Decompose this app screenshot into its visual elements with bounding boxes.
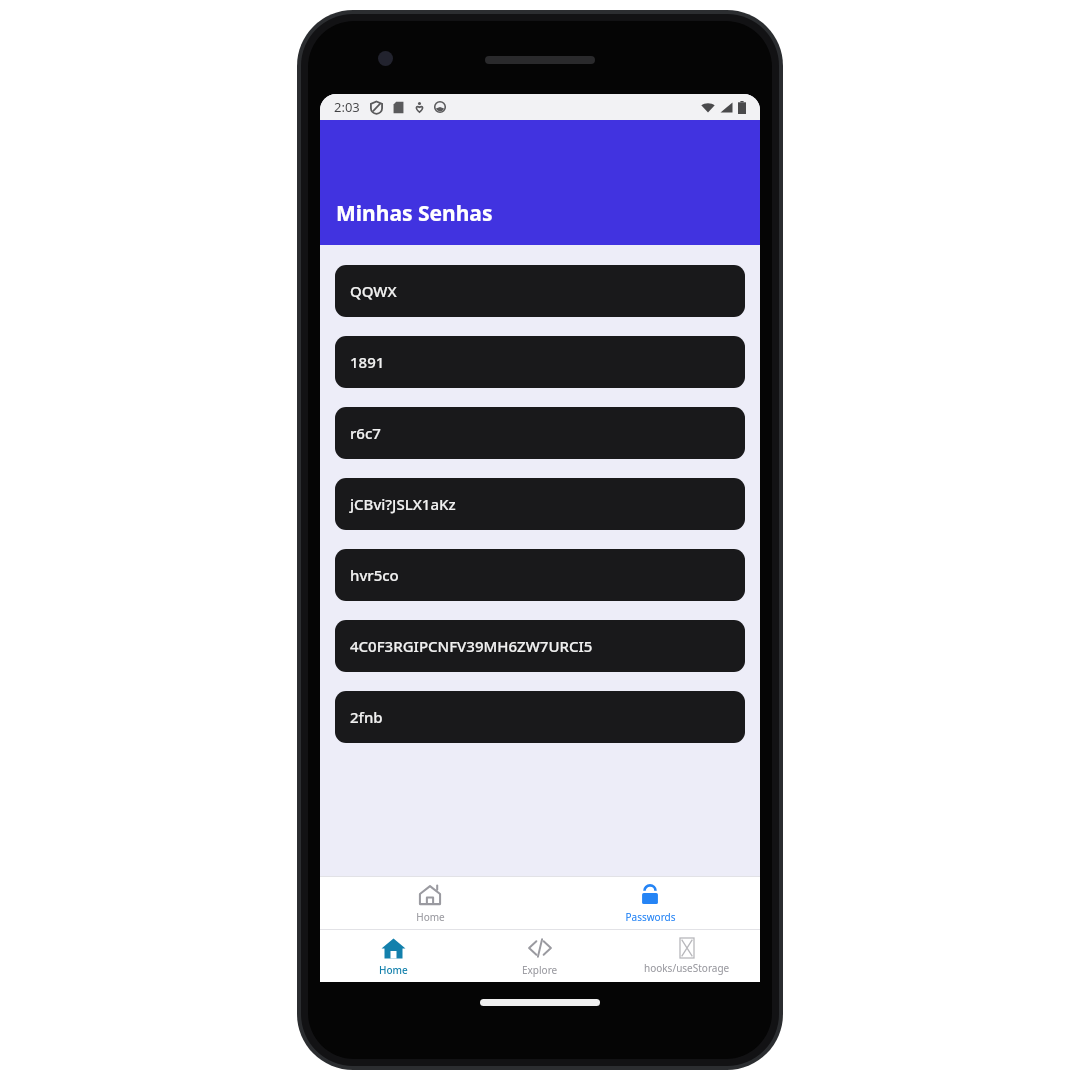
staticText: Explore <box>522 963 558 977</box>
staticText: hvr5co <box>350 565 399 585</box>
staticText: hooks/useStorage <box>644 961 730 975</box>
staticText: Home <box>379 963 408 977</box>
button[interactable]: r6c7 <box>335 407 745 459</box>
staticText: Passwords <box>625 910 676 924</box>
button[interactable]: hooks/useStorage <box>613 930 760 982</box>
staticText: QQWX <box>350 281 397 301</box>
button[interactable]: hvr5co <box>335 549 745 601</box>
staticText: 1891 <box>350 352 385 372</box>
button[interactable]: 4C0F3RGIPCNFV39MH6ZW7URCI5 <box>335 620 745 672</box>
staticText: 4C0F3RGIPCNFV39MH6ZW7URCI5 <box>350 636 593 656</box>
staticText: jCBvi?JSLX1aKz <box>350 494 456 514</box>
button[interactable]: 1891 <box>335 336 745 388</box>
button[interactable]: Home <box>320 877 540 929</box>
other: hooks/useStorage <box>676 937 698 959</box>
button[interactable]: 2fnb <box>335 691 745 743</box>
button[interactable]: Explore <box>466 930 613 982</box>
staticText: Minhas Senhas <box>336 199 493 228</box>
button[interactable]: QQWX <box>335 265 745 317</box>
button[interactable]: jCBvi?JSLX1aKz <box>335 478 745 530</box>
staticText: 2:03 <box>334 98 360 116</box>
button[interactable]: Home <box>320 930 466 982</box>
staticText: 2fnb <box>350 707 383 727</box>
button[interactable]: Passwords <box>540 877 760 929</box>
staticText: Home <box>416 910 445 924</box>
staticText: r6c7 <box>350 423 381 443</box>
